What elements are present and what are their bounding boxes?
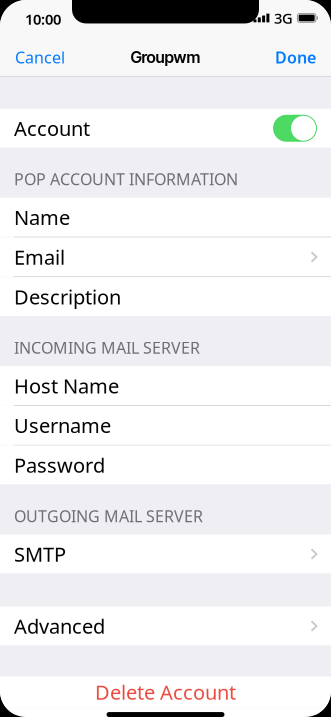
- button[interactable]: Password: [0, 446, 331, 485]
- button[interactable]: Account: [0, 109, 331, 148]
- staticText: Done: [275, 47, 316, 68]
- staticText: Description: [14, 283, 121, 310]
- staticText: Advanced: [14, 613, 105, 639]
- button[interactable]: Account: [273, 115, 317, 142]
- button[interactable]: Username: [0, 406, 331, 445]
- button[interactable]: SMTP: [0, 534, 331, 573]
- staticText: Cancel: [15, 47, 65, 68]
- staticText: POP ACCOUNT INFORMATION: [14, 168, 238, 190]
- button[interactable]: Email: [0, 237, 331, 276]
- button[interactable]: Delete Account: [0, 676, 331, 707]
- button[interactable]: Name: [0, 198, 331, 237]
- staticText: Username: [14, 412, 111, 439]
- button[interactable]: Cancel: [13, 37, 67, 78]
- button[interactable]: Done: [273, 37, 318, 78]
- staticText: 10:00: [25, 9, 61, 29]
- staticText: SMTP: [14, 541, 66, 567]
- staticText: Password: [14, 452, 105, 478]
- staticText: Delete Account: [95, 679, 236, 705]
- staticText: INCOMING MAIL SERVER: [14, 337, 200, 358]
- staticText: Host Name: [14, 372, 119, 399]
- staticText: Name: [14, 204, 70, 231]
- button[interactable]: Host Name: [0, 366, 331, 405]
- staticText: OUTGOING MAIL SERVER: [14, 505, 203, 526]
- button[interactable]: Advanced: [0, 606, 331, 645]
- button[interactable]: Description: [0, 277, 331, 316]
- staticText: Email: [14, 244, 65, 270]
- staticText: 3G: [274, 8, 293, 28]
- staticText: Groupwm: [130, 47, 200, 67]
- staticText: Account: [14, 115, 90, 142]
